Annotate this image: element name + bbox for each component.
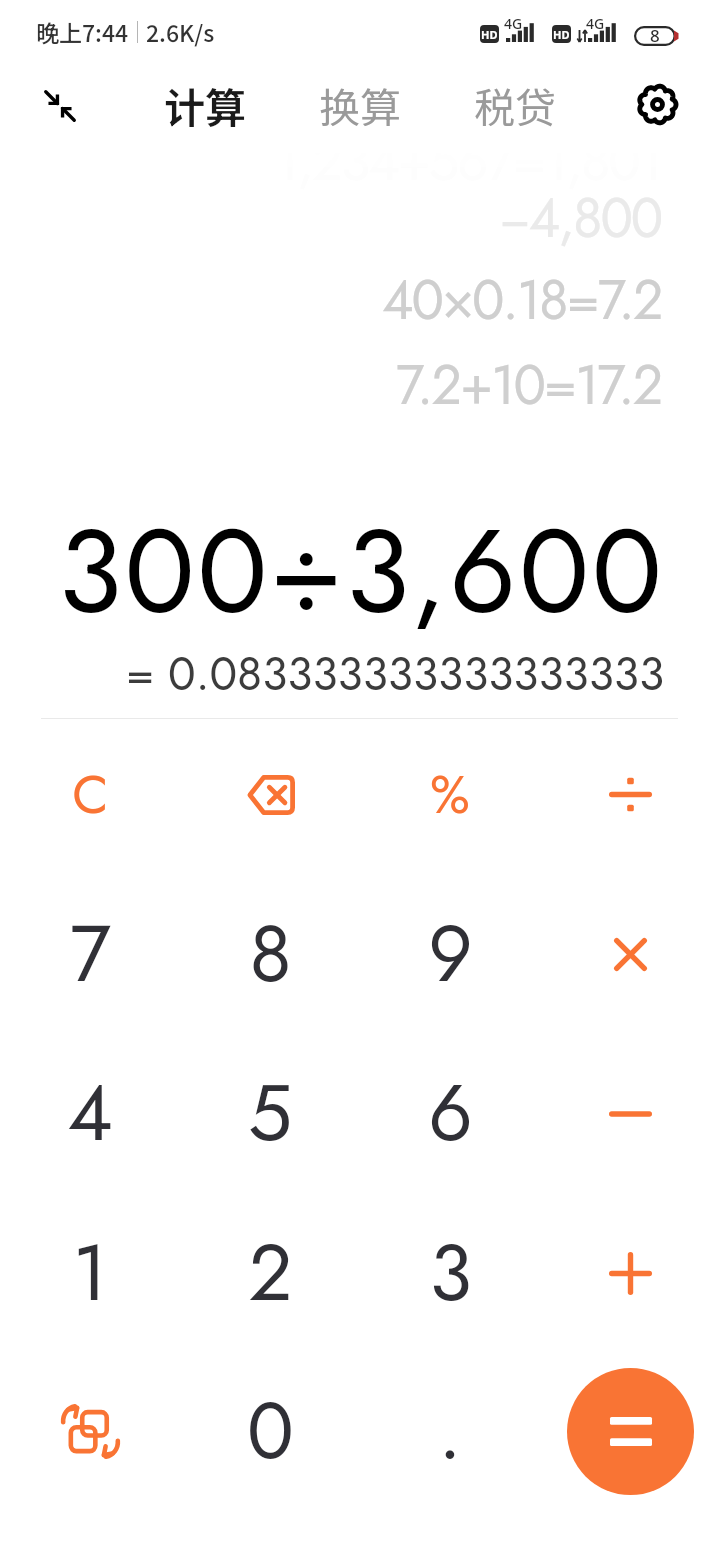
button[interactable]: Percent bbox=[360, 715, 540, 874]
staticText: 6 bbox=[428, 1057, 473, 1170]
staticText: 2.6K/s bbox=[146, 15, 215, 48]
button[interactable]: 0 bbox=[180, 1352, 360, 1511]
staticText: C bbox=[72, 756, 109, 833]
staticText: −4,800 bbox=[499, 179, 662, 247]
button[interactable]: 税贷 bbox=[457, 64, 573, 144]
button[interactable]: 换算 bbox=[302, 64, 418, 144]
staticText: 4G bbox=[586, 14, 605, 33]
button[interactable]: 7 bbox=[0, 875, 180, 1034]
staticText: 3 bbox=[429, 1217, 472, 1330]
button[interactable]: Minus bbox=[540, 1034, 720, 1193]
button[interactable]: 3 bbox=[360, 1194, 540, 1353]
button[interactable]: 2 bbox=[180, 1194, 360, 1353]
staticText: 40×0.18=7.2 bbox=[382, 261, 662, 329]
staticText: 2 bbox=[248, 1217, 293, 1330]
button[interactable]: 1 bbox=[0, 1194, 180, 1353]
staticText: 4G bbox=[504, 14, 523, 33]
staticText: 1,234+567=1,801 bbox=[275, 122, 662, 190]
staticText: 晚上7:44 bbox=[36, 15, 129, 48]
staticText: 4 bbox=[67, 1057, 113, 1170]
staticText: HD bbox=[481, 27, 498, 42]
button[interactable]: 8 bbox=[180, 875, 360, 1034]
staticText: % bbox=[430, 756, 470, 833]
button[interactable]: 4 bbox=[0, 1034, 180, 1193]
button[interactable]: Settings bbox=[613, 68, 701, 140]
staticText: HD bbox=[553, 27, 570, 42]
staticText: 9 bbox=[428, 898, 473, 1011]
staticText: 1 bbox=[72, 1217, 108, 1330]
staticText: 5 bbox=[248, 1057, 292, 1170]
button[interactable]: Clear bbox=[0, 715, 180, 874]
button[interactable]: Divide bbox=[540, 715, 720, 874]
staticText: . bbox=[438, 1375, 462, 1488]
staticText: 7 bbox=[70, 898, 111, 1011]
button[interactable]: 5 bbox=[180, 1034, 360, 1193]
button[interactable]: Plus bbox=[540, 1194, 720, 1353]
button[interactable]: 6 bbox=[360, 1034, 540, 1193]
staticText: 换算 bbox=[319, 75, 401, 134]
button[interactable]: Backspace bbox=[180, 715, 360, 874]
staticText: 8 bbox=[650, 24, 660, 47]
button[interactable]: 计算 bbox=[147, 64, 263, 144]
staticText: 7.2+10=17.2 bbox=[396, 346, 662, 414]
staticText: 税贷 bbox=[474, 75, 556, 134]
button[interactable]: Collapse bbox=[16, 70, 104, 142]
button[interactable]: 9 bbox=[360, 875, 540, 1034]
button[interactable]: Unit converter bbox=[0, 1352, 180, 1511]
button[interactable]: Multiply bbox=[540, 875, 720, 1034]
staticText: 0 bbox=[247, 1375, 294, 1488]
button[interactable]: . bbox=[360, 1352, 540, 1511]
staticText: 8 bbox=[249, 898, 292, 1011]
staticText: = 0.083333333333333333 bbox=[126, 641, 665, 701]
staticText: 300÷3,600 bbox=[58, 487, 665, 629]
button[interactable]: Equals bbox=[567, 1368, 694, 1495]
staticText: 计算 bbox=[164, 75, 246, 134]
